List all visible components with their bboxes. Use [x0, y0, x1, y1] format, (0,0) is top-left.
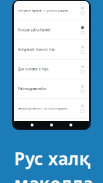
staticText: Которая рубль бережет.: [18, 28, 51, 32]
staticText: На чужой каравай — рота не разевай.: [18, 9, 69, 12]
staticText: Работа дурака любит.: [18, 87, 47, 91]
button[interactable]: Navigation key: [50, 124, 53, 126]
button[interactable]: Которая рубль бережет.: [14, 21, 89, 40]
staticText: Рус халқ: [14, 147, 90, 170]
staticText: Друг познается в беде.: [18, 67, 49, 71]
button[interactable]: Друг познается в беде.: [14, 60, 89, 79]
button[interactable]: Жизнь прожить — не поле перейти.: [14, 99, 89, 118]
button[interactable]: На буревесто томного глаз.: [14, 40, 89, 59]
staticText: На буревесто томного глаз.: [18, 48, 55, 51]
button[interactable]: Работа дурака любит.: [14, 79, 89, 98]
button[interactable]: На чужой каравай — рота не разевай.: [14, 1, 89, 20]
staticText: Жизнь прожить — не поле перейти.: [18, 107, 68, 110]
staticText: мақоллари: [14, 172, 99, 183]
